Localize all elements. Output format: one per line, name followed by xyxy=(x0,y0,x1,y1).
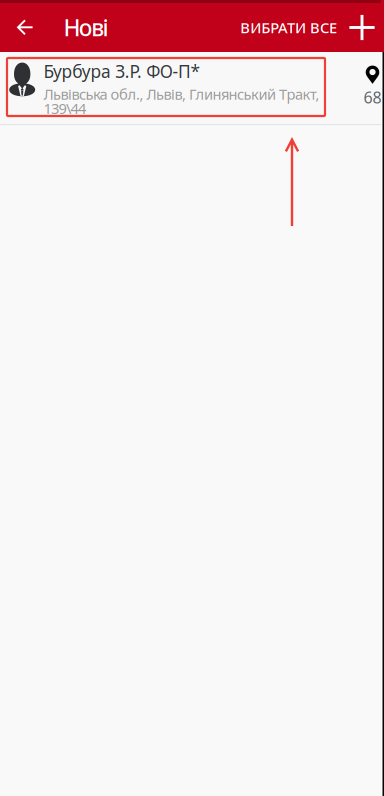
button[interactable]: Add xyxy=(349,3,384,52)
button[interactable]: Нові xyxy=(42,3,109,52)
staticText: 68 xyxy=(363,87,381,108)
staticText: Нові xyxy=(63,12,109,42)
staticText: Бурбура З.Р. ФО-П* xyxy=(43,60,201,83)
staticText: ВИБРАТИ ВСЕ xyxy=(240,18,337,37)
button[interactable]: Back xyxy=(0,3,42,52)
button[interactable]: Бурбура З.Р. ФО-П* xyxy=(0,52,384,124)
staticText: 139\44 xyxy=(43,99,86,118)
staticText: Львівська обл., Львів, Глинянський Тракт… xyxy=(43,84,319,104)
button[interactable]: ВИБРАТИ ВСЕ xyxy=(240,3,349,52)
